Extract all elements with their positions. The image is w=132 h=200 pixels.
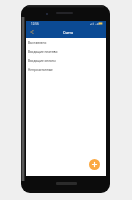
staticText: Входящие платежи bbox=[28, 50, 58, 54]
button[interactable]: Входящие оплаты bbox=[26, 56, 106, 65]
button[interactable]: Входящие платежи bbox=[26, 47, 106, 56]
staticText: 12:56 bbox=[31, 22, 39, 26]
staticText: Счета bbox=[63, 30, 73, 35]
button[interactable]: Непрочитанные bbox=[26, 65, 106, 74]
staticText: Входящие оплаты bbox=[28, 59, 56, 63]
button[interactable]: Add bbox=[89, 159, 100, 170]
button[interactable]: Выставленo bbox=[26, 38, 106, 47]
staticText: Выставленo bbox=[28, 41, 47, 45]
staticText: Непрочитанные bbox=[28, 68, 53, 72]
button[interactable]: Back bbox=[28, 28, 36, 36]
